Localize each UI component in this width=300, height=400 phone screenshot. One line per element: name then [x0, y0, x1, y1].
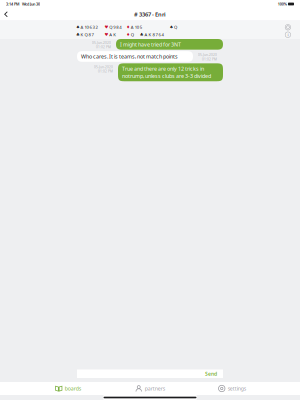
staticText: 01:02 PM	[202, 57, 217, 61]
button[interactable]: Compass	[285, 24, 291, 30]
staticText: A 10 6 3 2	[81, 24, 98, 30]
staticText: # 3367 - Enri	[134, 10, 166, 18]
button[interactable]: Back	[0, 8, 12, 20]
staticText: I might have tried for 3NT	[120, 41, 181, 48]
staticText: Q	[174, 24, 177, 30]
staticText: Who cares. It is teams, not match points	[81, 53, 178, 60]
staticText: ♦	[126, 32, 130, 37]
staticText: 3:14 PM Wed Jun 30	[6, 1, 40, 7]
staticText: ♥	[105, 25, 109, 30]
button[interactable]: partners	[109, 382, 191, 395]
staticText: ♣	[76, 32, 80, 37]
staticText: i	[287, 32, 288, 38]
staticText: 01:02 PM	[96, 45, 111, 49]
staticText: settings	[228, 385, 246, 392]
button[interactable]: settings	[191, 382, 273, 395]
staticText: ♠	[169, 25, 173, 30]
staticText: 100%	[278, 1, 287, 7]
button[interactable]: Information	[285, 32, 291, 38]
staticText: 01:02 PM	[98, 69, 113, 74]
staticText: A K	[109, 32, 116, 37]
staticText: ♠	[76, 25, 80, 30]
staticText: Q 9 8 4	[109, 24, 121, 30]
staticText: ♣	[140, 32, 144, 37]
staticText: boards	[65, 385, 81, 392]
staticText: ♥	[105, 32, 109, 37]
button[interactable]: boards	[27, 382, 109, 395]
staticText: A K 8 7 6 4	[144, 32, 163, 37]
staticText: Send	[205, 370, 217, 377]
staticText: A 10 5	[131, 24, 142, 30]
staticText: K Q 8 7	[81, 32, 94, 37]
staticText: partners	[145, 385, 165, 392]
staticText: ♦	[126, 25, 130, 30]
staticText: True and there are only 12 tricks in not…	[122, 65, 211, 79]
staticText: 05-Jun-2020	[94, 65, 113, 69]
button[interactable]: Send	[199, 369, 223, 378]
staticText: 05-Jun-2020	[92, 40, 111, 45]
staticText: 05-Jun-2020	[198, 53, 217, 57]
staticText: Q	[131, 32, 134, 37]
